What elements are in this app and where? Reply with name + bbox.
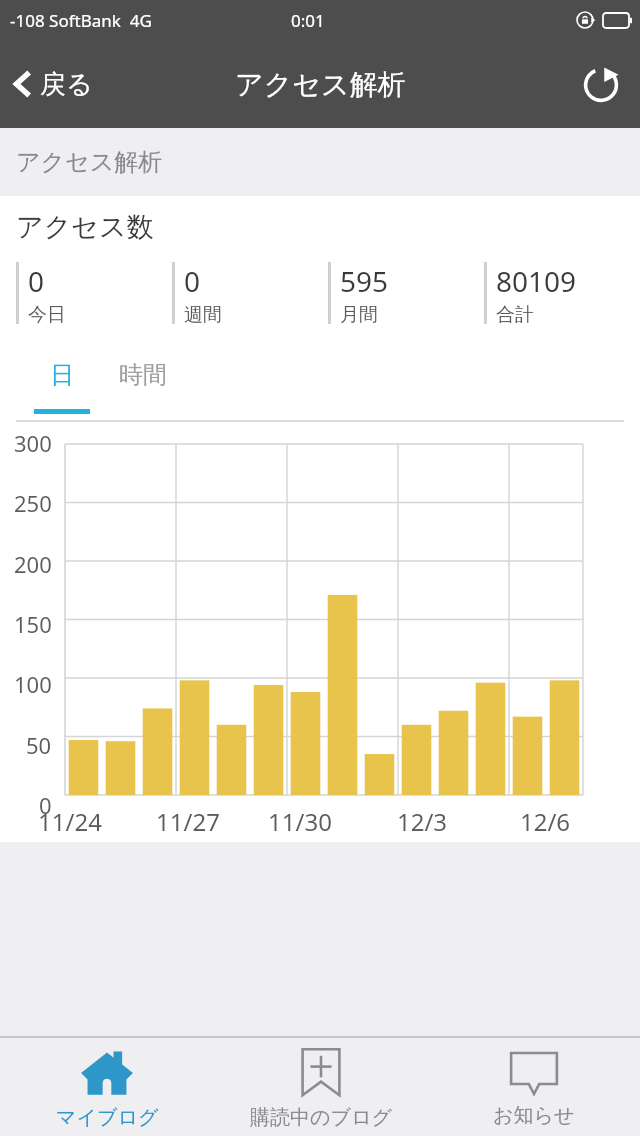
button[interactable]: お知らせ bbox=[427, 1038, 640, 1136]
button[interactable]: 戻る bbox=[8, 61, 97, 107]
staticText: アクセス解析 bbox=[16, 147, 163, 177]
staticText: 月間 bbox=[340, 303, 378, 324]
staticText: -108 SoftBank 4G bbox=[10, 9, 152, 32]
staticText: 12/3 bbox=[377, 805, 467, 838]
staticText: 今日 bbox=[28, 303, 66, 324]
button[interactable]: 購読中のブログ bbox=[214, 1038, 427, 1136]
staticText: 150 bbox=[14, 609, 52, 639]
staticText: 11/24 bbox=[25, 805, 115, 838]
staticText: お知らせ bbox=[493, 1103, 575, 1128]
button[interactable]: マイブログ bbox=[0, 1038, 214, 1136]
staticText: 週間 bbox=[184, 303, 222, 324]
staticText: 12/6 bbox=[500, 805, 590, 838]
staticText: アクセス解析 bbox=[235, 67, 406, 102]
button[interactable]: 日 bbox=[32, 352, 92, 422]
staticText: 80109 bbox=[496, 262, 577, 300]
staticText: 時間 bbox=[119, 360, 167, 390]
button[interactable]: Reload bbox=[574, 57, 628, 111]
staticText: 購読中のブログ bbox=[250, 1105, 392, 1130]
staticText: 0 bbox=[39, 790, 52, 820]
staticText: 595 bbox=[340, 262, 389, 300]
staticText: マイブログ bbox=[56, 1105, 159, 1130]
staticText: 0:01 bbox=[291, 9, 325, 32]
staticText: 0 bbox=[184, 262, 201, 300]
staticText: 11/27 bbox=[143, 805, 233, 838]
staticText: 日 bbox=[50, 360, 74, 390]
staticText: 11/30 bbox=[255, 805, 345, 838]
staticText: 250 bbox=[14, 488, 52, 518]
staticText: アクセス数 bbox=[16, 210, 154, 244]
staticText: 50 bbox=[26, 730, 52, 760]
staticText: 300 bbox=[14, 428, 52, 458]
staticText: 200 bbox=[14, 549, 52, 579]
staticText: 戻る bbox=[40, 68, 93, 101]
button[interactable]: 時間 bbox=[98, 352, 188, 422]
staticText: 合計 bbox=[496, 303, 534, 324]
staticText: 0 bbox=[28, 262, 45, 300]
staticText: 100 bbox=[14, 669, 52, 699]
